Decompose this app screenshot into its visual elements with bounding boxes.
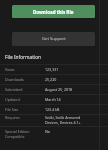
- staticText: Submitted: [5, 87, 45, 92]
- staticText: Views: [5, 67, 45, 72]
- staticText: 123,331: [45, 67, 94, 72]
- button[interactable]: Get Support: [12, 32, 95, 46]
- staticText: Seiiki, Seiiki Armored Devices, Devices …: [45, 115, 94, 125]
- staticText: Special Edition Compatible: [5, 129, 45, 139]
- staticText: 123.4 kB: [45, 107, 94, 112]
- staticText: Updated: [5, 97, 45, 102]
- staticText: Requires: [5, 115, 45, 120]
- staticText: No: [45, 129, 94, 134]
- staticText: Downloads: [5, 77, 45, 82]
- staticText: Download this file: [33, 9, 74, 15]
- staticText: August 25, 2018: [45, 87, 94, 92]
- staticText: File Information: [5, 54, 42, 61]
- button[interactable]: Download this file: [12, 5, 95, 18]
- staticText: March 14: [45, 97, 94, 102]
- staticText: 25,220: [45, 77, 94, 82]
- staticText: File Size: [5, 107, 45, 112]
- staticText: Get Support: [42, 36, 66, 42]
